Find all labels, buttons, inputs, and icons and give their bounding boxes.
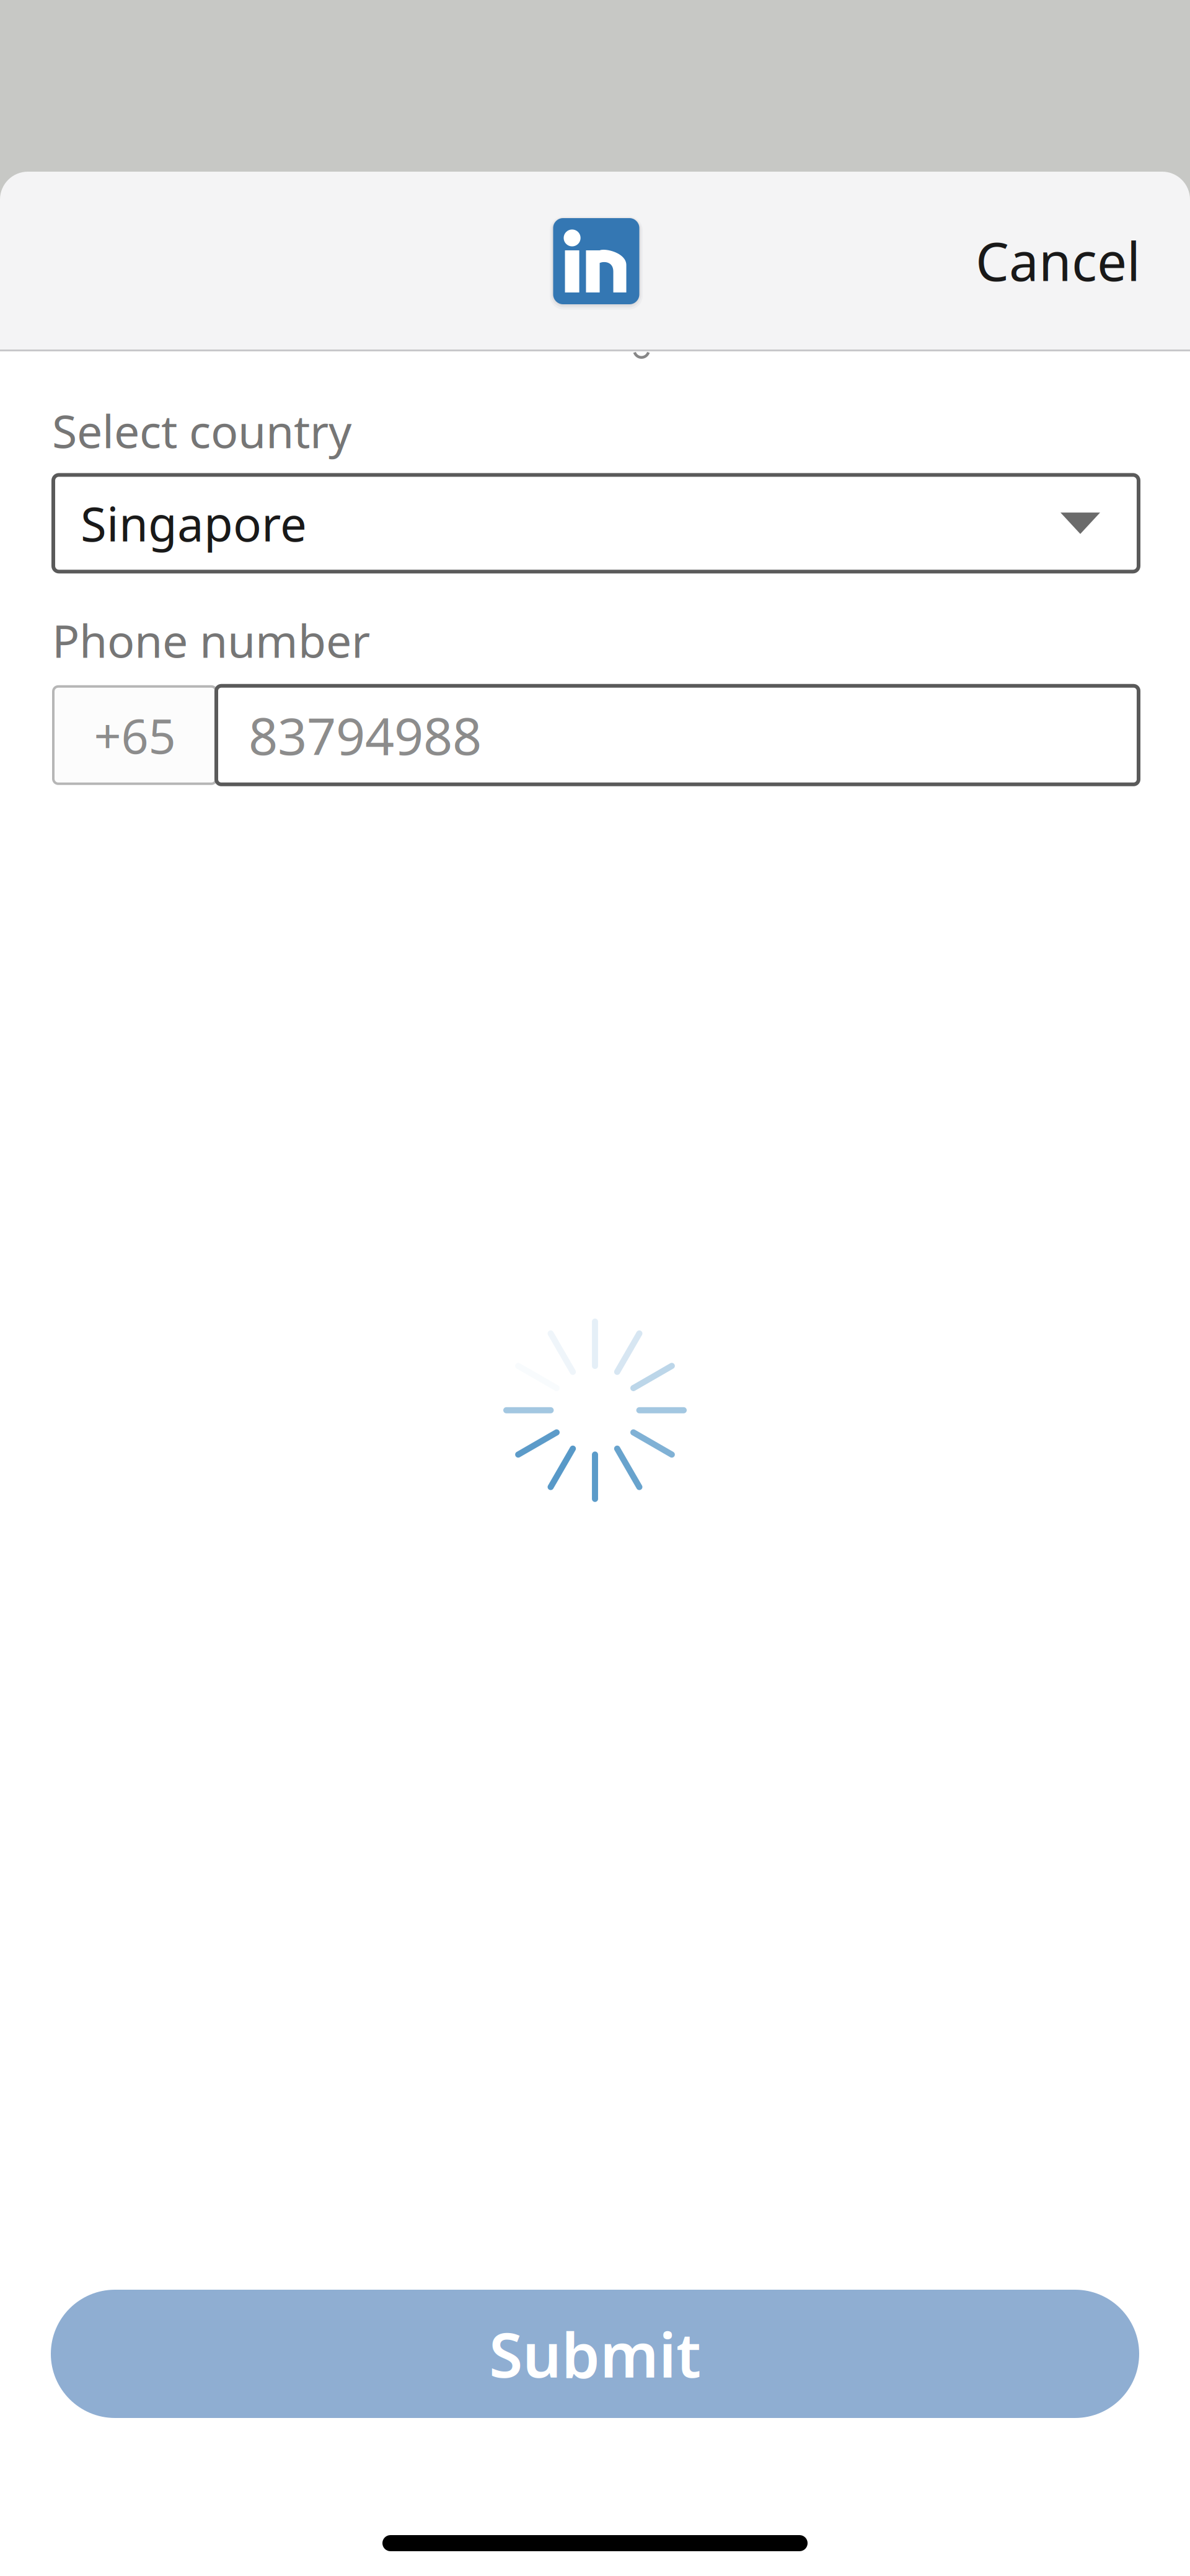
staticText: Cancel (976, 225, 1140, 296)
button[interactable]: Singapore (53, 475, 1139, 572)
button[interactable]: Cancel (953, 204, 1163, 317)
staticText: Submit (489, 2313, 701, 2394)
staticText: Phone number (52, 610, 370, 670)
staticText: 83794988 (249, 701, 482, 769)
button[interactable]: Submit (51, 2290, 1139, 2418)
staticText: Select country (52, 400, 351, 461)
staticText: +65 (94, 703, 176, 767)
staticText: Singapore (81, 492, 307, 554)
button[interactable]: 83794988 (216, 686, 1139, 784)
